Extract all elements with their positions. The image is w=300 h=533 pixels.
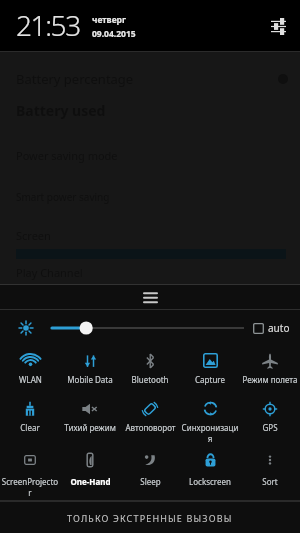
staticText: ТОЛЬКО ЭКСТРЕННЫЕ ВЫЗОВЫ	[67, 512, 233, 524]
staticText: 09.04.2015	[92, 28, 136, 40]
staticText: Sleep	[140, 476, 161, 487]
button[interactable]: Синхронизация	[180, 394, 240, 442]
staticText: Capture	[195, 374, 225, 385]
button[interactable]: GPS	[240, 394, 300, 442]
staticText: Battery used	[16, 101, 106, 120]
staticText: Lockscreen	[189, 476, 231, 487]
button[interactable]: Clear	[0, 394, 60, 442]
staticText: четверг	[92, 14, 127, 26]
staticText: auto	[268, 321, 290, 335]
button[interactable]: Auto brightness toggle	[0, 310, 52, 346]
button[interactable]: Capture	[180, 346, 240, 394]
button[interactable]: Brightness slider	[52, 316, 244, 340]
staticText: WLAN	[19, 374, 42, 385]
button[interactable]: Тихий режим	[60, 394, 120, 442]
staticText: 21:53	[16, 6, 80, 44]
staticText: ScreenProjector	[1, 476, 59, 498]
staticText: Bluetooth	[131, 374, 169, 385]
button[interactable]: Режим полета	[240, 346, 300, 394]
staticText: Тихий режим	[64, 422, 116, 433]
button[interactable]: Автоповорот	[120, 394, 180, 442]
staticText: GPS	[262, 422, 278, 433]
staticText: Clear	[20, 422, 40, 433]
staticText: Sort	[262, 476, 278, 487]
button[interactable]: auto	[253, 321, 290, 335]
button[interactable]: Mobile Data	[60, 346, 120, 394]
button[interactable]: Lockscreen	[180, 442, 240, 500]
button[interactable]: One-Hand	[60, 442, 120, 500]
button[interactable]: Quick settings editor	[263, 11, 293, 41]
button[interactable]: ScreenProjector	[0, 442, 60, 500]
button[interactable]: Sort	[240, 442, 300, 500]
staticText: Автоповорот	[125, 422, 176, 433]
staticText: Mobile Data	[67, 374, 113, 385]
button[interactable]: Collapse panel	[0, 285, 300, 309]
staticText: Режим полета	[242, 374, 298, 385]
staticText: Синхронизация	[181, 422, 239, 442]
button[interactable]: WLAN	[0, 346, 60, 394]
button[interactable]: Bluetooth	[120, 346, 180, 394]
button[interactable]: Sleep	[120, 442, 180, 500]
staticText: One-Hand	[70, 476, 111, 487]
